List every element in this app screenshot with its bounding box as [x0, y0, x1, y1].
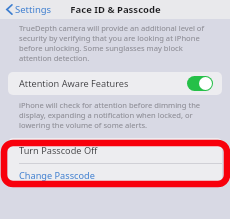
staticText: iPhone will check for attention before d…	[19, 100, 216, 130]
staticText: Attention Aware Features	[19, 77, 129, 90]
button[interactable]: Attention Aware Features	[8, 72, 222, 95]
button[interactable]: Change Passcode	[8, 164, 222, 186]
staticText: Turn Passcode Off	[19, 144, 98, 157]
button[interactable]: Settings	[4, 1, 54, 18]
staticText: Face ID & Passcode	[70, 3, 161, 16]
other: Attention Aware Features toggle	[187, 76, 213, 91]
staticText: Change Passcode	[19, 169, 95, 182]
staticText: TrueDepth camera will provide an additio…	[19, 23, 216, 63]
staticText: Settings	[15, 3, 52, 16]
button[interactable]: Turn Passcode Off	[8, 138, 222, 163]
